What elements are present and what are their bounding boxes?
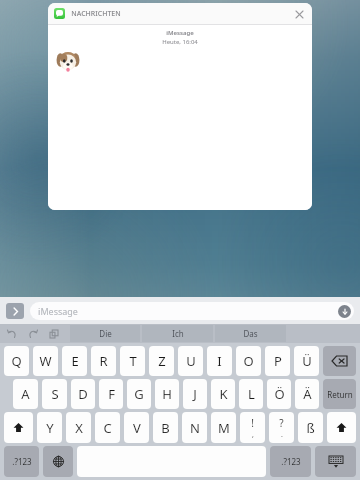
staticText: R bbox=[99, 352, 108, 370]
staticText: ? bbox=[279, 416, 284, 430]
button[interactable]: Ü bbox=[294, 346, 319, 376]
button[interactable]: G bbox=[127, 379, 151, 409]
button[interactable]: Ä bbox=[295, 379, 319, 409]
button[interactable]: Kopieren bbox=[48, 328, 60, 340]
button[interactable]: ! bbox=[240, 412, 265, 443]
button[interactable]: W bbox=[33, 346, 58, 376]
button[interactable]: H bbox=[155, 379, 179, 409]
button[interactable]: N bbox=[182, 412, 207, 443]
staticText: S bbox=[51, 385, 59, 403]
button[interactable]: F bbox=[99, 379, 123, 409]
staticText: A bbox=[21, 385, 30, 403]
staticText: L bbox=[248, 385, 255, 403]
button[interactable]: Schließen bbox=[293, 8, 305, 20]
staticText: E bbox=[71, 352, 79, 370]
button[interactable]: Wiederholen bbox=[27, 328, 39, 340]
button[interactable]: A bbox=[13, 379, 38, 409]
staticText: Ü bbox=[302, 352, 312, 370]
button[interactable]: Umschalt bbox=[4, 412, 33, 443]
button[interactable]: Audio aufnehmen bbox=[338, 305, 351, 318]
staticText: F bbox=[108, 385, 115, 403]
staticText: Q bbox=[11, 352, 22, 370]
staticText: iMessage bbox=[166, 29, 194, 37]
staticText: iMessage bbox=[38, 305, 78, 317]
button[interactable]: B bbox=[153, 412, 178, 443]
button[interactable]: L bbox=[239, 379, 263, 409]
staticText: O bbox=[243, 352, 254, 370]
button[interactable]: V bbox=[124, 412, 149, 443]
button[interactable]: Tastatur ausblenden bbox=[315, 446, 356, 477]
staticText: Z bbox=[158, 352, 166, 370]
button[interactable]: M bbox=[211, 412, 236, 443]
staticText: N bbox=[190, 419, 200, 437]
button[interactable]: Z bbox=[149, 346, 174, 376]
staticText: J bbox=[193, 385, 197, 403]
staticText: M bbox=[218, 419, 230, 437]
button[interactable]: NACHRICHTEN bbox=[48, 3, 312, 210]
staticText: C bbox=[103, 419, 112, 437]
button[interactable]: O bbox=[236, 346, 261, 376]
staticText: , bbox=[252, 430, 254, 440]
button[interactable]: R bbox=[91, 346, 116, 376]
button[interactable]: P bbox=[265, 346, 290, 376]
button[interactable]: Return bbox=[323, 379, 356, 409]
button[interactable]: C bbox=[95, 412, 120, 443]
button[interactable]: J bbox=[183, 379, 207, 409]
button[interactable]: I bbox=[207, 346, 232, 376]
button[interactable]: Sprache wechseln bbox=[43, 446, 73, 477]
staticText: K bbox=[219, 385, 228, 403]
staticText: Das bbox=[243, 328, 258, 339]
staticText: P bbox=[274, 352, 282, 370]
button[interactable]: Y bbox=[37, 412, 62, 443]
button[interactable]: Ö bbox=[267, 379, 291, 409]
staticText: Heute, 16:04 bbox=[162, 38, 198, 46]
staticText: D bbox=[78, 385, 88, 403]
button[interactable]: App-Leiste öffnen bbox=[6, 303, 24, 319]
staticText: Ä bbox=[303, 385, 312, 403]
staticText: W bbox=[39, 352, 52, 370]
staticText: Ö bbox=[274, 385, 285, 403]
button[interactable]: ? bbox=[269, 412, 294, 443]
staticText: G bbox=[134, 385, 144, 403]
staticText: U bbox=[186, 352, 196, 370]
staticText: V bbox=[133, 419, 141, 437]
button[interactable]: Löschen bbox=[323, 346, 356, 376]
button[interactable]: X bbox=[66, 412, 91, 443]
staticText: Return bbox=[327, 389, 353, 400]
button[interactable]: D bbox=[71, 379, 95, 409]
button[interactable]: T bbox=[120, 346, 145, 376]
staticText: T bbox=[129, 352, 137, 370]
staticText: H bbox=[162, 385, 172, 403]
staticText: NACHRICHTEN bbox=[71, 9, 121, 19]
button[interactable]: .?123 bbox=[270, 446, 311, 477]
button[interactable]: Das bbox=[215, 325, 286, 342]
button[interactable]: iMessage bbox=[30, 302, 354, 320]
button[interactable]: Q bbox=[4, 346, 29, 376]
button[interactable]: Umschalt bbox=[327, 412, 356, 443]
staticText: I bbox=[217, 352, 222, 370]
staticText: . bbox=[281, 430, 283, 440]
staticText: X bbox=[75, 419, 83, 437]
button[interactable]: .?123 bbox=[4, 446, 39, 477]
staticText: .?123 bbox=[281, 456, 301, 467]
staticText: .?123 bbox=[12, 456, 32, 467]
button[interactable]: K bbox=[211, 379, 235, 409]
button[interactable]: U bbox=[178, 346, 203, 376]
staticText: B bbox=[161, 419, 170, 437]
staticText: ß bbox=[306, 419, 315, 437]
button[interactable]: Ich bbox=[142, 325, 213, 342]
button[interactable]: Widerrufen bbox=[6, 328, 18, 340]
button[interactable]: E bbox=[62, 346, 87, 376]
staticText: Y bbox=[46, 419, 54, 437]
staticText: Ich bbox=[172, 328, 184, 339]
button[interactable]: Die bbox=[70, 325, 140, 342]
button[interactable]: S bbox=[42, 379, 67, 409]
button[interactable]: ß bbox=[298, 412, 323, 443]
staticText: Die bbox=[99, 328, 112, 339]
staticText: ! bbox=[251, 416, 254, 430]
